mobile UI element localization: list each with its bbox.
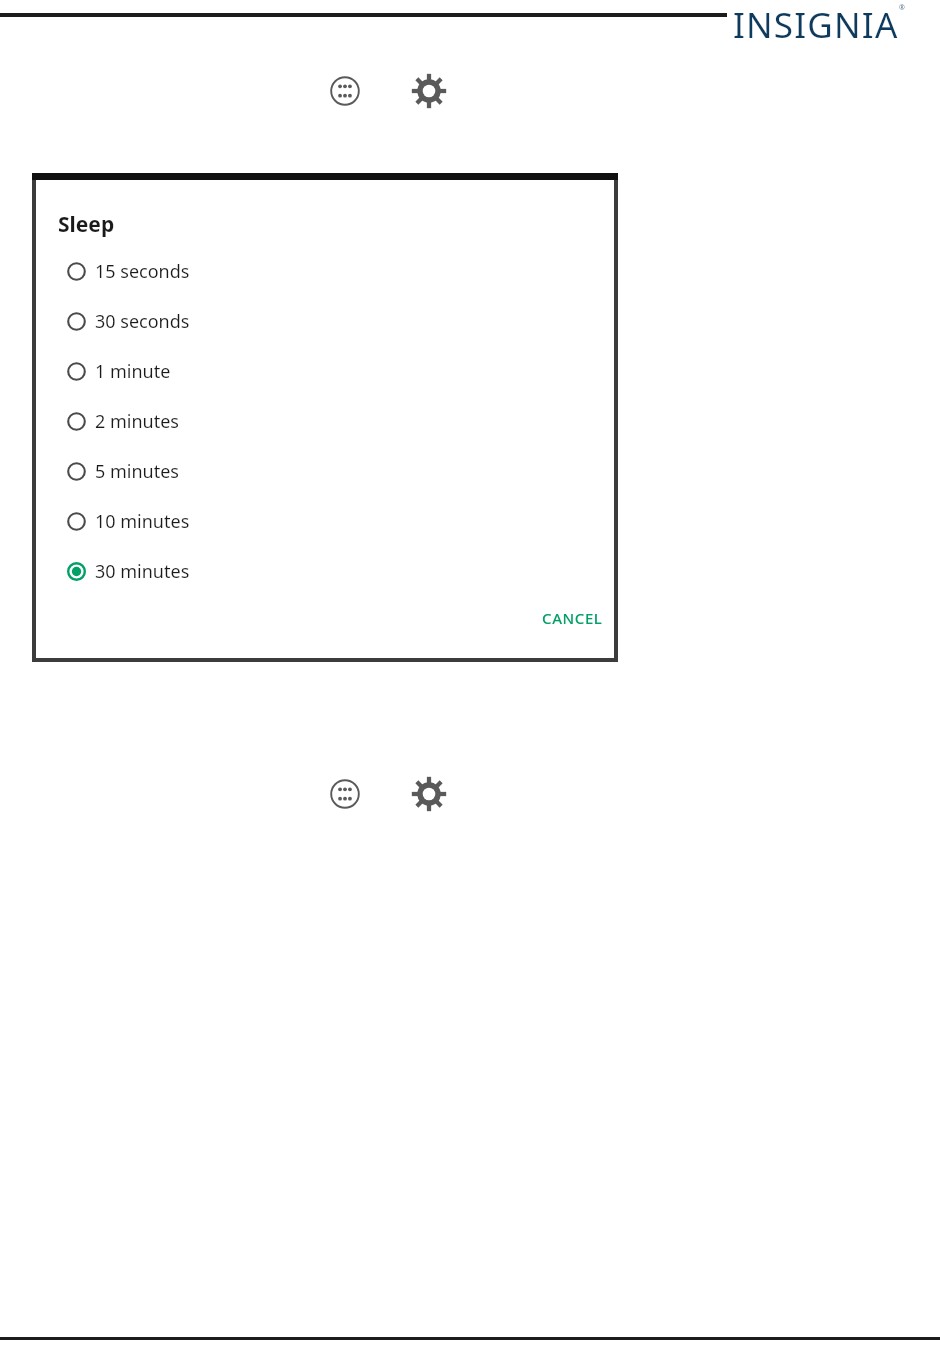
staticText: Sleep [58, 210, 115, 239]
staticText: 30 seconds [95, 309, 190, 334]
button[interactable]: Apps [330, 76, 360, 106]
button[interactable]: 2 minutes [36, 396, 614, 446]
staticText: 15 seconds [95, 259, 190, 284]
button[interactable]: 30 seconds [36, 296, 614, 346]
staticText: 2 minutes [95, 409, 179, 434]
button[interactable]: Apps [330, 779, 360, 809]
button[interactable]: 30 minutes [36, 546, 614, 596]
button[interactable]: CANCEL [534, 601, 611, 635]
button[interactable]: 10 minutes [36, 496, 614, 546]
button[interactable]: 1 minute [36, 346, 614, 396]
staticText: ® [899, 3, 905, 13]
button[interactable]: 15 seconds [36, 246, 614, 296]
staticText: 10 minutes [95, 509, 190, 534]
staticText: INSIGNIA [733, 1, 899, 49]
staticText: 1 minute [95, 359, 171, 384]
button[interactable]: Settings [412, 777, 446, 811]
button[interactable]: 5 minutes [36, 446, 614, 496]
staticText: 30 minutes [95, 559, 190, 584]
button[interactable]: Settings [412, 74, 446, 108]
staticText: 5 minutes [95, 459, 179, 484]
staticText: CANCEL [542, 608, 603, 628]
